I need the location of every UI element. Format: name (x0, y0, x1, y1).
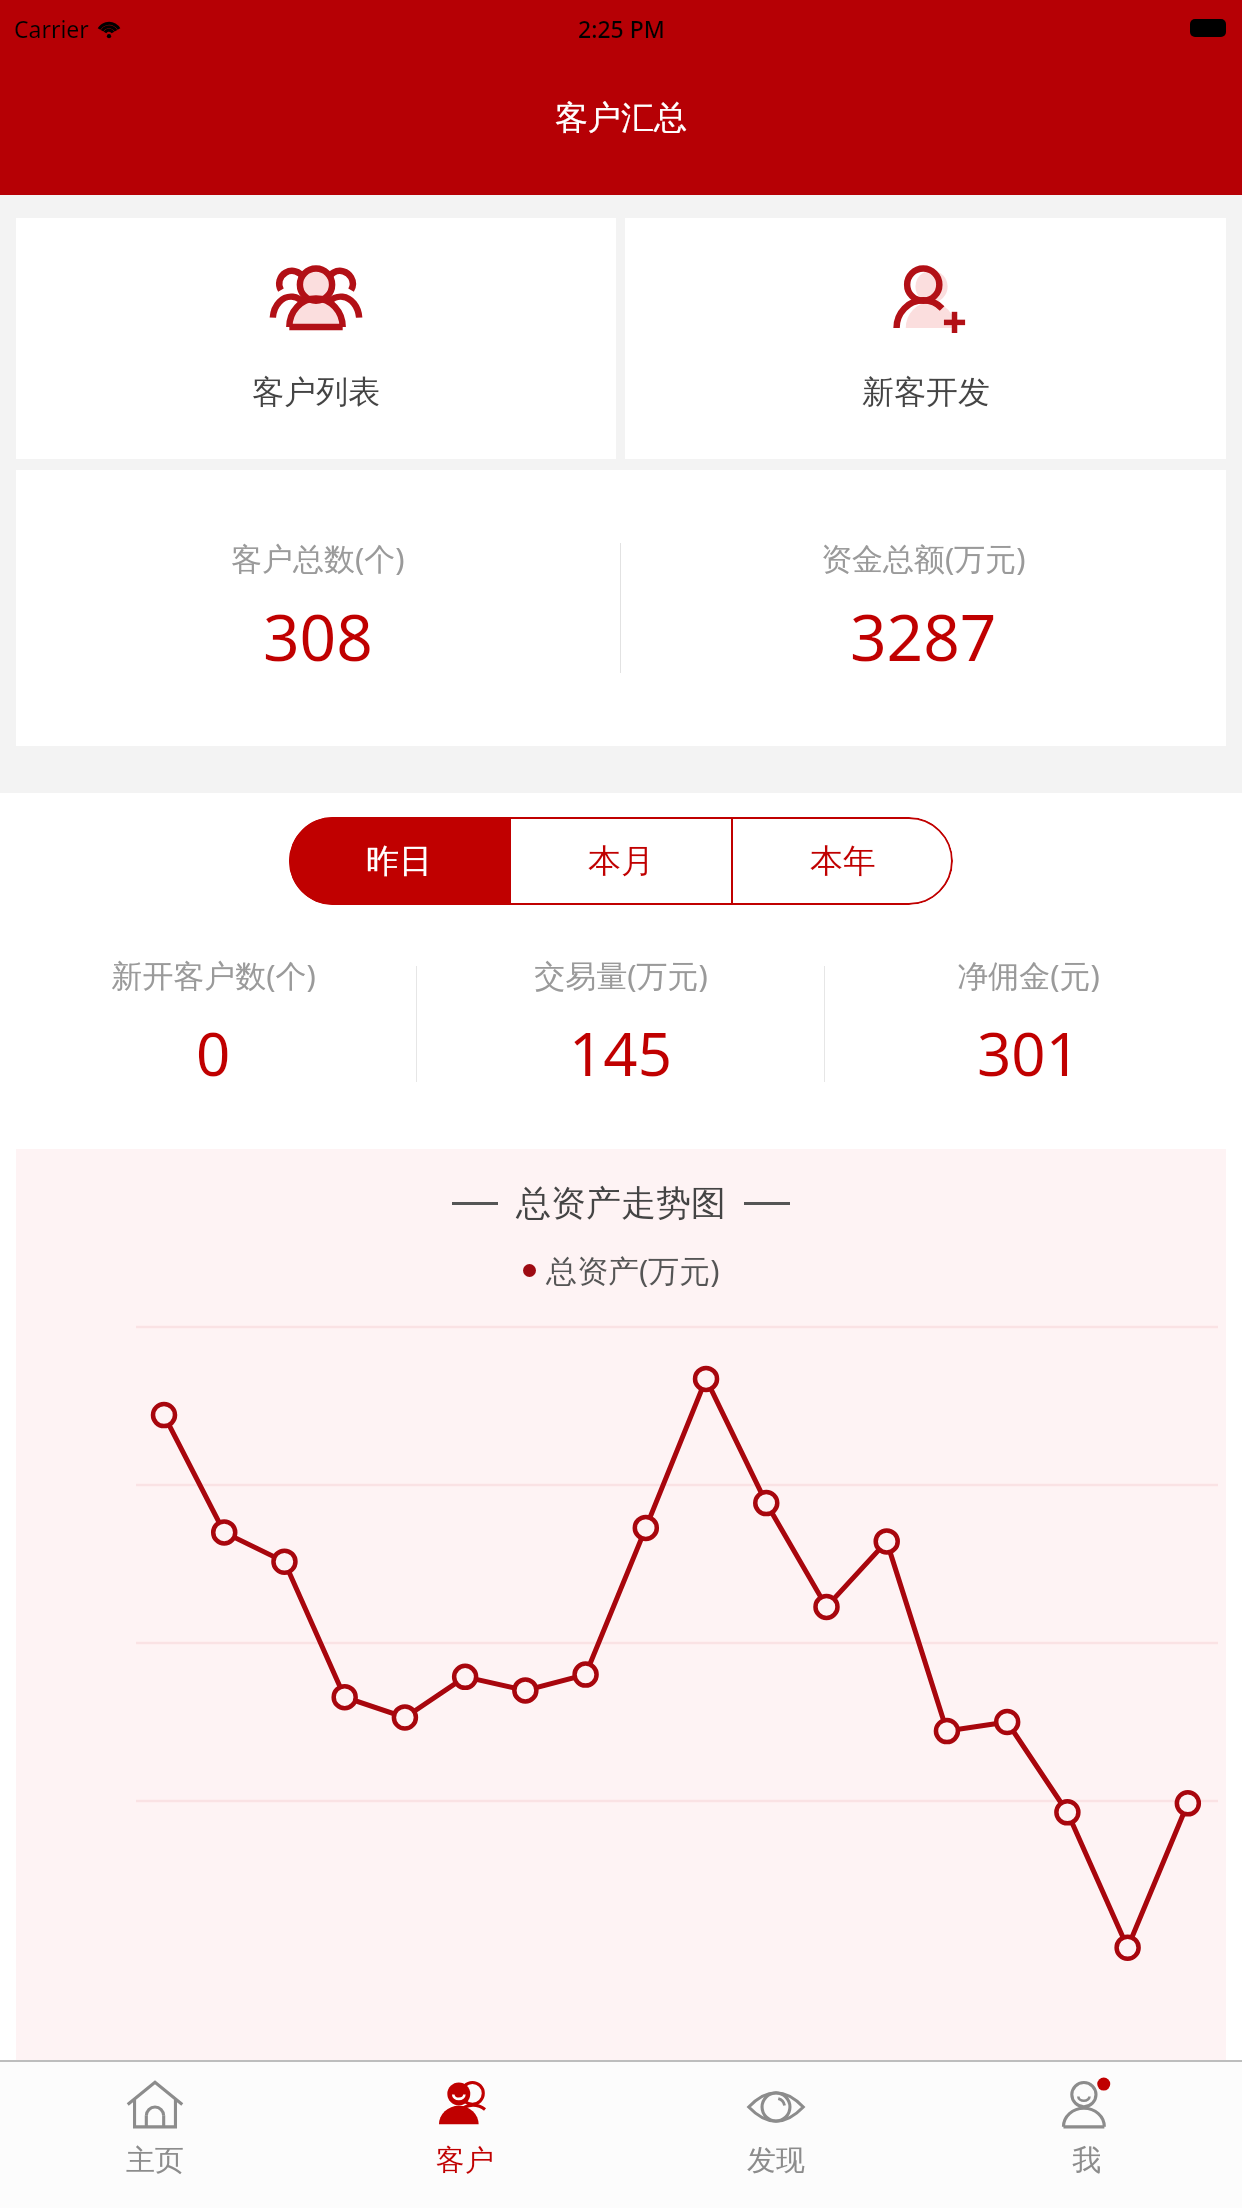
staticText: 0 (196, 1012, 231, 1094)
button[interactable]: 昨日 (289, 817, 509, 905)
button[interactable]: Customers (310, 2062, 620, 2208)
staticText: 客户总数(个) (231, 537, 405, 579)
staticText: 主页 (126, 2142, 184, 2179)
staticText: 2:25 PM (578, 13, 665, 44)
staticText: 3287 (850, 593, 997, 680)
staticText: 净佣金(元) (957, 954, 1100, 996)
button[interactable]: 客户总数(个) (16, 537, 620, 680)
button[interactable]: 本月 (511, 817, 731, 905)
staticText: 发现 (747, 2142, 805, 2179)
staticText: 新客开发 (862, 372, 990, 412)
button[interactable]: 客户列表 (16, 218, 616, 459)
button[interactable]: 交易量(万元) (417, 954, 824, 1094)
staticText: 客户汇总 (555, 97, 687, 139)
button[interactable]: Discover (620, 2062, 931, 2208)
staticText: 新开客户数(个) (111, 954, 316, 996)
staticText: 总资产走势图 (516, 1181, 726, 1225)
staticText: 总资产(万元) (546, 1249, 720, 1291)
staticText: 交易量(万元) (534, 954, 708, 996)
button[interactable]: Me (931, 2062, 1242, 2208)
button[interactable]: 净佣金(元) (825, 954, 1232, 1094)
staticText: 本年 (810, 840, 876, 882)
staticText: 我 (1072, 2142, 1101, 2179)
button[interactable]: 资金总额(万元) (621, 537, 1226, 680)
staticText: 308 (263, 593, 373, 680)
staticText: 资金总额(万元) (821, 537, 1026, 579)
staticText: 客户列表 (252, 372, 380, 412)
staticText: 昨日 (366, 840, 432, 882)
button[interactable]: 新客开发 (625, 218, 1226, 459)
button[interactable]: Home (0, 2062, 310, 2208)
button[interactable]: 新开客户数(个) (10, 954, 416, 1094)
staticText: 客户 (436, 2142, 494, 2179)
staticText: 145 (569, 1012, 672, 1094)
staticText: 本月 (588, 840, 654, 882)
staticText: Carrier (14, 13, 89, 44)
button[interactable]: 本年 (733, 817, 953, 905)
staticText: 301 (977, 1012, 1080, 1094)
